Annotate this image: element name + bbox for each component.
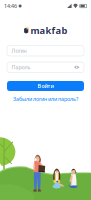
button[interactable]: Войти (0, 81, 91, 91)
staticText: 14:46 (4, 2, 17, 10)
staticText: Войти (37, 82, 53, 90)
staticText: makfab (30, 24, 67, 37)
button[interactable]: Забыли логин или пароль? (0, 95, 91, 103)
staticText: Забыли логин или пароль? (13, 95, 78, 103)
staticText: Пароль (11, 64, 30, 71)
staticText: Логин (11, 47, 26, 54)
